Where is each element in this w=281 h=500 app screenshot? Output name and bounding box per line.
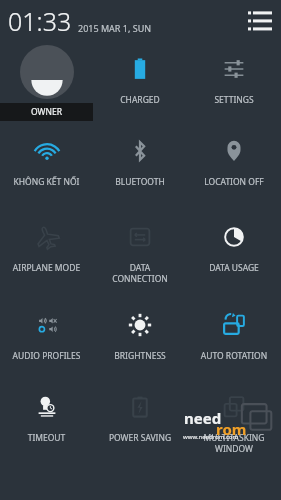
- staticText: POWER SAVING: [93, 432, 187, 444]
- button[interactable]: DATA USAGE: [187, 210, 281, 298]
- staticText: CHARGED: [93, 94, 187, 106]
- button[interactable]: Notifications list: [248, 9, 272, 33]
- staticText: AUDIO PROFILES: [0, 350, 93, 362]
- button[interactable]: LOCATION OFF: [187, 124, 281, 210]
- staticText: MULTITASKING WINDOW: [187, 432, 281, 454]
- button[interactable]: KHÔNG KẾT NỐI: [0, 124, 93, 210]
- staticText: TIMEOUT: [0, 432, 93, 444]
- button[interactable]: AUTO ROTATION: [187, 298, 281, 380]
- staticText: 01:33: [8, 4, 72, 38]
- staticText: SETTINGS: [187, 94, 281, 106]
- button[interactable]: SETTINGS: [187, 42, 281, 124]
- button[interactable]: OWNER: [0, 42, 93, 124]
- staticText: DATA USAGE: [187, 262, 281, 274]
- button[interactable]: CHARGED: [93, 42, 187, 124]
- button[interactable]: TIMEOUT: [0, 380, 93, 500]
- button[interactable]: AUDIO PROFILES: [0, 298, 93, 380]
- staticText: OWNER: [31, 106, 62, 118]
- staticText: BLUETOOTH: [93, 176, 187, 188]
- button[interactable]: MULTITASKING WINDOW: [187, 380, 281, 500]
- staticText: 2015 MAR 1, SUN: [78, 22, 152, 34]
- staticText: AUTO ROTATION: [187, 350, 281, 362]
- staticText: KHÔNG KẾT NỐI: [0, 176, 93, 188]
- staticText: DATA CONNECTION: [93, 262, 187, 284]
- staticText: www.needrom.com: [183, 433, 239, 441]
- staticText: LOCATION OFF: [187, 176, 281, 188]
- staticText: need: [184, 408, 222, 428]
- button[interactable]: AIRPLANE MODE: [0, 210, 93, 298]
- button[interactable]: POWER SAVING: [93, 380, 187, 500]
- button[interactable]: BRIGHTNESS: [93, 298, 187, 380]
- staticText: AIRPLANE MODE: [0, 262, 93, 274]
- button[interactable]: BLUETOOTH: [93, 124, 187, 210]
- staticText: rom: [216, 419, 247, 439]
- staticText: BRIGHTNESS: [93, 350, 187, 362]
- button[interactable]: DATA CONNECTION: [93, 210, 187, 298]
